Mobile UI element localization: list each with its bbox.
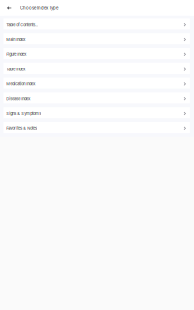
staticText: Disease Index — [6, 96, 30, 101]
staticText: Signs & Symptoms — [6, 111, 41, 116]
button[interactable]: Disease Index — [3, 92, 190, 104]
staticText: Medication Index — [6, 81, 35, 86]
button[interactable]: Figure Index — [3, 48, 190, 59]
button[interactable]: Main Index — [3, 33, 190, 44]
button[interactable]: Medication Index — [3, 78, 190, 89]
staticText: Table of Contents... — [6, 22, 38, 27]
button[interactable]: Signs & Symptoms — [3, 107, 190, 118]
button[interactable]: Table Index — [3, 63, 190, 74]
staticText: Figure Index — [6, 52, 26, 57]
button[interactable]: Back — [0, 0, 19, 16]
staticText: Main Index — [6, 37, 25, 42]
staticText: Table Index — [6, 67, 25, 71]
button[interactable]: Table of Contents... — [3, 18, 190, 30]
button[interactable]: Favorites & Notes — [3, 122, 190, 133]
staticText: Choose Index Type — [20, 5, 58, 11]
staticText: Favorites & Notes — [6, 126, 37, 131]
